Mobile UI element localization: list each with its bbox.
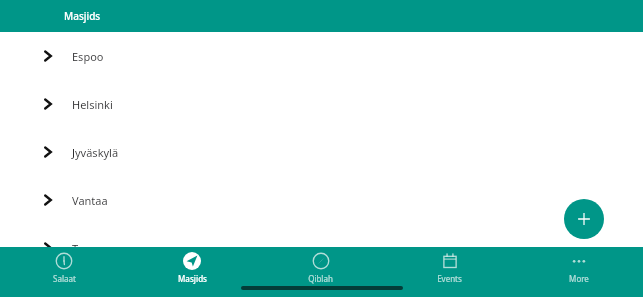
button[interactable]: Masjids xyxy=(128,247,256,297)
button[interactable]: Tampere xyxy=(0,224,643,272)
staticText: Tampere xyxy=(72,241,118,256)
button[interactable]: Salaat xyxy=(0,247,128,297)
button[interactable]: Qiblah xyxy=(256,247,385,297)
staticText: Espoo xyxy=(72,49,104,64)
button[interactable]: Espoo xyxy=(0,32,643,80)
button[interactable]: Helsinki xyxy=(0,80,643,128)
button[interactable]: Vantaa xyxy=(0,176,643,224)
staticText: Salaat xyxy=(53,273,76,284)
button[interactable]: Events xyxy=(385,247,514,297)
staticText: Helsinki xyxy=(72,97,113,112)
staticText: Masjids xyxy=(178,273,207,284)
button[interactable]: Add masjid xyxy=(564,199,604,239)
button[interactable]: More xyxy=(514,247,643,297)
staticText: Events xyxy=(437,273,462,284)
staticText: Jyväskylä xyxy=(72,145,119,160)
button[interactable]: Jyväskylä xyxy=(0,128,643,176)
staticText: Masjids xyxy=(64,9,101,23)
staticText: Qiblah xyxy=(308,273,333,284)
staticText: Vantaa xyxy=(72,193,108,208)
staticText: More xyxy=(569,273,589,284)
